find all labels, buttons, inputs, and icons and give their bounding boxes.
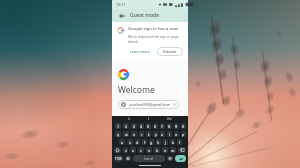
- staticText: We've improved the sign-in page with mor…: [128, 34, 183, 38]
- button[interactable]: 2: [123, 123, 129, 129]
- button[interactable]: Cancel: [133, 155, 165, 162]
- staticText: a: [121, 140, 124, 145]
- staticText: f: [144, 140, 146, 145]
- staticText: ?123: [115, 157, 122, 161]
- button[interactable]: s: [127, 139, 133, 145]
- staticText: 6: [154, 124, 157, 129]
- button[interactable]: 8: [167, 123, 172, 129]
- button[interactable]: y: [153, 131, 158, 137]
- staticText: i: [169, 132, 170, 137]
- button[interactable]: g: [149, 139, 154, 145]
- button[interactable]: j: [163, 139, 168, 145]
- staticText: 8: [168, 124, 171, 129]
- staticText: 0: [182, 124, 185, 129]
- staticText: c: [140, 148, 142, 153]
- button[interactable]: Settings: [167, 156, 173, 161]
- staticText: o: [175, 132, 178, 137]
- staticText: the: [167, 117, 172, 121]
- button[interactable]: m: [170, 147, 176, 153]
- button[interactable]: e: [131, 131, 137, 137]
- button[interactable]: 0: [181, 123, 186, 129]
- button[interactable]: v: [146, 147, 152, 153]
- staticText: 1: [117, 124, 120, 129]
- staticText: l: [179, 140, 180, 145]
- button[interactable]: 4: [139, 123, 144, 129]
- staticText: r: [141, 132, 143, 137]
- staticText: n: [164, 148, 167, 153]
- button[interactable]: Backspace: [178, 147, 186, 153]
- button[interactable]: 5: [146, 123, 151, 129]
- staticText: Welcome: [118, 84, 155, 96]
- staticText: 3: [133, 124, 136, 129]
- button[interactable]: a: [119, 139, 125, 145]
- staticText: 9: [175, 124, 178, 129]
- button[interactable]: it: [125, 117, 133, 121]
- staticText: v: [148, 148, 150, 153]
- staticText: Learn more: [130, 49, 150, 54]
- staticText: w: [125, 132, 128, 137]
- button[interactable]: Shift: [114, 147, 121, 153]
- button[interactable]: 9: [174, 123, 179, 129]
- button[interactable]: Back: [116, 10, 127, 21]
- staticText: s: [129, 140, 131, 145]
- button[interactable]: p: [181, 131, 186, 137]
- staticText: 12:11: [116, 2, 126, 7]
- staticText: Dismiss: [163, 49, 177, 54]
- staticText: z: [125, 148, 127, 153]
- button[interactable]: I: [145, 117, 153, 121]
- button[interactable]: 7: [160, 123, 165, 129]
- button[interactable]: 6: [153, 123, 158, 129]
- staticText: details: [128, 39, 139, 43]
- staticText: h: [157, 140, 160, 145]
- staticText: k: [172, 140, 174, 145]
- staticText: I: [148, 117, 150, 121]
- staticText: t: [148, 132, 150, 137]
- button[interactable]: i: [167, 131, 172, 137]
- button[interactable]: w: [123, 131, 129, 137]
- staticText: Google sign-in has a new look: [128, 26, 183, 32]
- button[interactable]: u: [160, 131, 165, 137]
- staticText: q: [117, 132, 120, 137]
- button[interactable]: x: [130, 147, 136, 153]
- button[interactable]: ?123: [114, 155, 123, 162]
- staticText: d: [136, 140, 139, 145]
- button[interactable]: yourbest999@gmail.com: [118, 100, 179, 109]
- staticText: y: [155, 132, 157, 137]
- button[interactable]: l: [177, 139, 182, 145]
- button[interactable]: c: [138, 147, 144, 153]
- staticText: 2: [125, 124, 128, 129]
- button[interactable]: f: [142, 139, 147, 145]
- button[interactable]: the: [164, 117, 175, 121]
- button[interactable]: Enter: [175, 155, 186, 162]
- button[interactable]: Dismiss: [157, 47, 183, 56]
- staticText: 5: [147, 124, 150, 129]
- staticText: it: [128, 117, 130, 121]
- button[interactable]: t: [146, 131, 151, 137]
- staticText: j: [165, 140, 166, 145]
- staticText: 4: [140, 124, 143, 129]
- button[interactable]: Learn more: [126, 47, 154, 56]
- button[interactable]: k: [170, 139, 175, 145]
- staticText: g: [150, 140, 153, 145]
- button[interactable]: b: [154, 147, 160, 153]
- staticText: x: [132, 148, 134, 153]
- button[interactable]: 1: [115, 123, 121, 129]
- button[interactable]: h: [156, 139, 161, 145]
- button[interactable]: q: [115, 131, 121, 137]
- button[interactable]: r: [139, 131, 144, 137]
- staticText: m: [171, 148, 175, 153]
- button[interactable]: o: [174, 131, 179, 137]
- button[interactable]: Emoji: [125, 156, 131, 161]
- staticText: Guest mode: [130, 12, 160, 19]
- button[interactable]: 3: [131, 123, 137, 129]
- staticText: u: [161, 132, 164, 137]
- button[interactable]: n: [162, 147, 168, 153]
- staticText: e: [133, 132, 136, 137]
- button[interactable]: d: [135, 139, 140, 145]
- staticText: yourbest999@gmail.com: [129, 102, 170, 107]
- staticText: Cancel: [144, 157, 154, 161]
- button[interactable]: z: [123, 147, 128, 153]
- staticText: b: [156, 148, 159, 153]
- staticText: 7: [161, 124, 164, 129]
- staticText: p: [182, 132, 185, 137]
